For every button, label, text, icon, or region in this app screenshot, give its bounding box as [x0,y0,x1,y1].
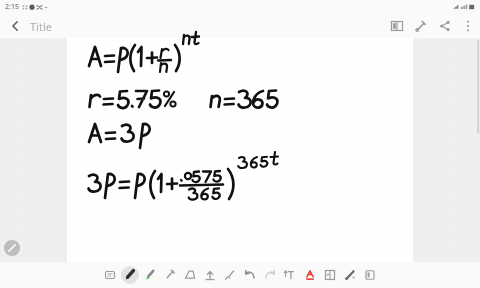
button[interactable]: Lock [361,266,379,284]
button[interactable]: Redo [261,266,279,284]
button[interactable]: Back [6,17,24,35]
staticText: 2:15 [5,2,19,12]
button[interactable]: Text color [301,266,319,284]
button[interactable]: Highlighter [141,266,159,284]
button[interactable]: Insert text [281,266,299,284]
button[interactable]: Edit [4,240,20,256]
button[interactable]: Text [101,266,119,284]
button[interactable]: Insert image [321,266,339,284]
button[interactable]: Pencil [161,266,179,284]
button[interactable]: Smart tools [341,266,359,284]
button[interactable]: Share [436,17,454,35]
button[interactable]: Undo [241,266,259,284]
button[interactable]: Attach [412,17,430,35]
button[interactable]: Eraser [181,266,199,284]
button[interactable]: View mode [388,17,406,35]
staticText: Title [30,19,52,34]
button[interactable]: Select [201,266,219,284]
button[interactable]: Pen [121,266,139,284]
button[interactable]: Brush [221,266,239,284]
button[interactable]: More options [460,18,476,34]
button[interactable]: Title [30,19,52,34]
